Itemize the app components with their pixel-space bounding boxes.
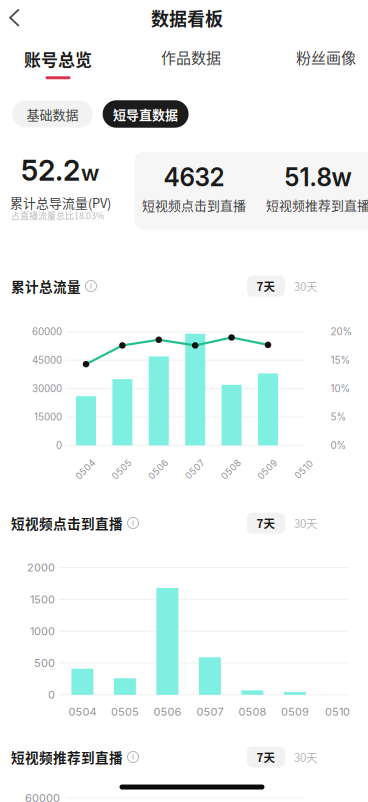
staticText: 15% [330,354,350,366]
button[interactable]: 账号总览 [24,47,92,79]
button[interactable]: Back [0,0,29,35]
staticText: 占直播流量总比18.03% [11,209,104,222]
button[interactable]: 短导直数据 [103,100,189,128]
staticText: 0510 [293,464,315,475]
staticText: w [81,159,99,186]
staticText: 短视频推荐到直播 [11,747,123,767]
staticText: 1000 [30,624,55,638]
staticText: 60000 [25,791,60,802]
staticText: 0510 [325,705,350,718]
button[interactable]: 30天 [286,512,326,533]
staticText: 短视频点击到直播 [142,195,246,214]
staticText: 52.2 [21,153,80,188]
staticText: 20% [330,326,352,338]
staticText: 2000 [27,561,55,574]
staticText: 基础数据 [26,105,78,123]
button[interactable]: 粉丝画像 [296,45,356,77]
staticText: 30天 [294,749,318,765]
button[interactable]: 7天 [247,275,285,296]
staticText: 0506 [146,464,170,475]
button[interactable]: 作品数据 [161,45,221,77]
staticText: 7天 [256,515,275,531]
staticText: 0504 [68,705,96,718]
staticText: 1500 [30,593,55,606]
staticText: 0506 [153,705,181,718]
staticText: 0505 [110,464,134,475]
staticText: 7天 [256,278,275,294]
staticText: 粉丝画像 [296,46,356,68]
staticText: 作品数据 [161,46,221,68]
staticText: 0508 [238,705,266,718]
staticText: 0 [56,439,62,451]
staticText: 60000 [32,326,62,338]
button[interactable]: 7天 [247,746,285,767]
staticText: 51.8w [284,162,351,192]
staticText: 累计总流量 [11,276,81,296]
button[interactable]: 30天 [286,746,326,767]
staticText: 0505 [111,705,139,718]
staticText: 0 [48,688,55,701]
staticText: 15000 [34,411,62,423]
staticText: 0509 [255,464,279,475]
staticText: 短导直数据 [113,105,178,123]
staticText: 0% [330,439,346,451]
staticText: 30天 [294,278,318,294]
staticText: 数据看板 [151,5,223,31]
button[interactable]: 30天 [286,275,326,296]
staticText: 累计总导流量(PV) [10,193,111,211]
staticText: 短视频点击到直播 [11,513,123,533]
staticText: 4632 [163,162,224,192]
staticText: 0507 [196,705,223,718]
staticText: 短视频推荐到直播 [266,195,368,214]
button[interactable]: 基础数据 [12,100,93,127]
staticText: 0504 [73,464,97,475]
staticText: 45000 [32,354,62,366]
staticText: 账号总览 [24,47,92,71]
staticText: 30000 [32,383,62,395]
staticText: 0508 [219,464,243,475]
staticText: 7天 [256,749,275,765]
staticText: 500 [34,656,55,670]
staticText: 0509 [281,705,309,718]
staticText: 30天 [294,515,318,531]
button[interactable]: 7天 [247,512,285,533]
staticText: 5% [330,411,346,423]
staticText: 10% [330,383,350,395]
staticText: 0507 [183,464,206,475]
